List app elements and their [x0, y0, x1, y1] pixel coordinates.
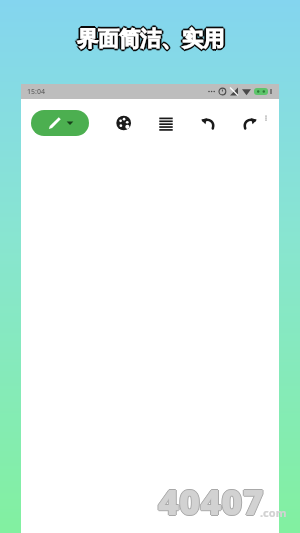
staticText: .com [260, 505, 287, 520]
staticText: 界面简洁、实用 [77, 27, 224, 53]
button[interactable]: Color palette [111, 110, 137, 136]
staticText: 界面简洁、实用 [78, 26, 225, 52]
staticText: 界面简洁、实用 [78, 27, 225, 53]
button[interactable]: Redo [237, 110, 263, 136]
staticText: 界面简洁、实用 [76, 26, 223, 52]
staticText: 40407 [158, 476, 264, 525]
staticText: 40407 [158, 477, 264, 526]
staticText: 界面简洁、实用 [76, 27, 223, 53]
staticText: 15:04 [27, 87, 45, 97]
button[interactable]: Pen tool [31, 110, 89, 136]
staticText: 界面简洁、实用 [77, 24, 224, 50]
staticText: 界面简洁、实用 [77, 26, 224, 52]
staticText: 界面简洁、实用 [75, 26, 222, 52]
staticText: 界面简洁、实用 [77, 28, 224, 54]
staticText: 界面简洁、实用 [79, 26, 226, 52]
button[interactable]: Layers [153, 110, 179, 136]
button[interactable]: More options [263, 110, 269, 136]
staticText: 40407 [157, 477, 263, 526]
staticText: 界面简洁、实用 [77, 25, 224, 51]
staticText: 40407 [158, 478, 264, 527]
staticText: 40407 [159, 477, 265, 526]
staticText: 界面简洁、实用 [76, 25, 223, 51]
staticText: 界面简洁、实用 [78, 25, 225, 51]
button[interactable]: Undo [195, 110, 221, 136]
